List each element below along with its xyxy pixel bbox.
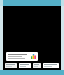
button[interactable]: Item four <box>43 63 59 68</box>
button[interactable]: Item one <box>5 63 17 68</box>
other: Chart <box>31 54 36 59</box>
button[interactable]: Item two <box>19 63 31 68</box>
button[interactable]: Chart <box>6 52 38 61</box>
button[interactable]: Item three <box>33 63 41 68</box>
